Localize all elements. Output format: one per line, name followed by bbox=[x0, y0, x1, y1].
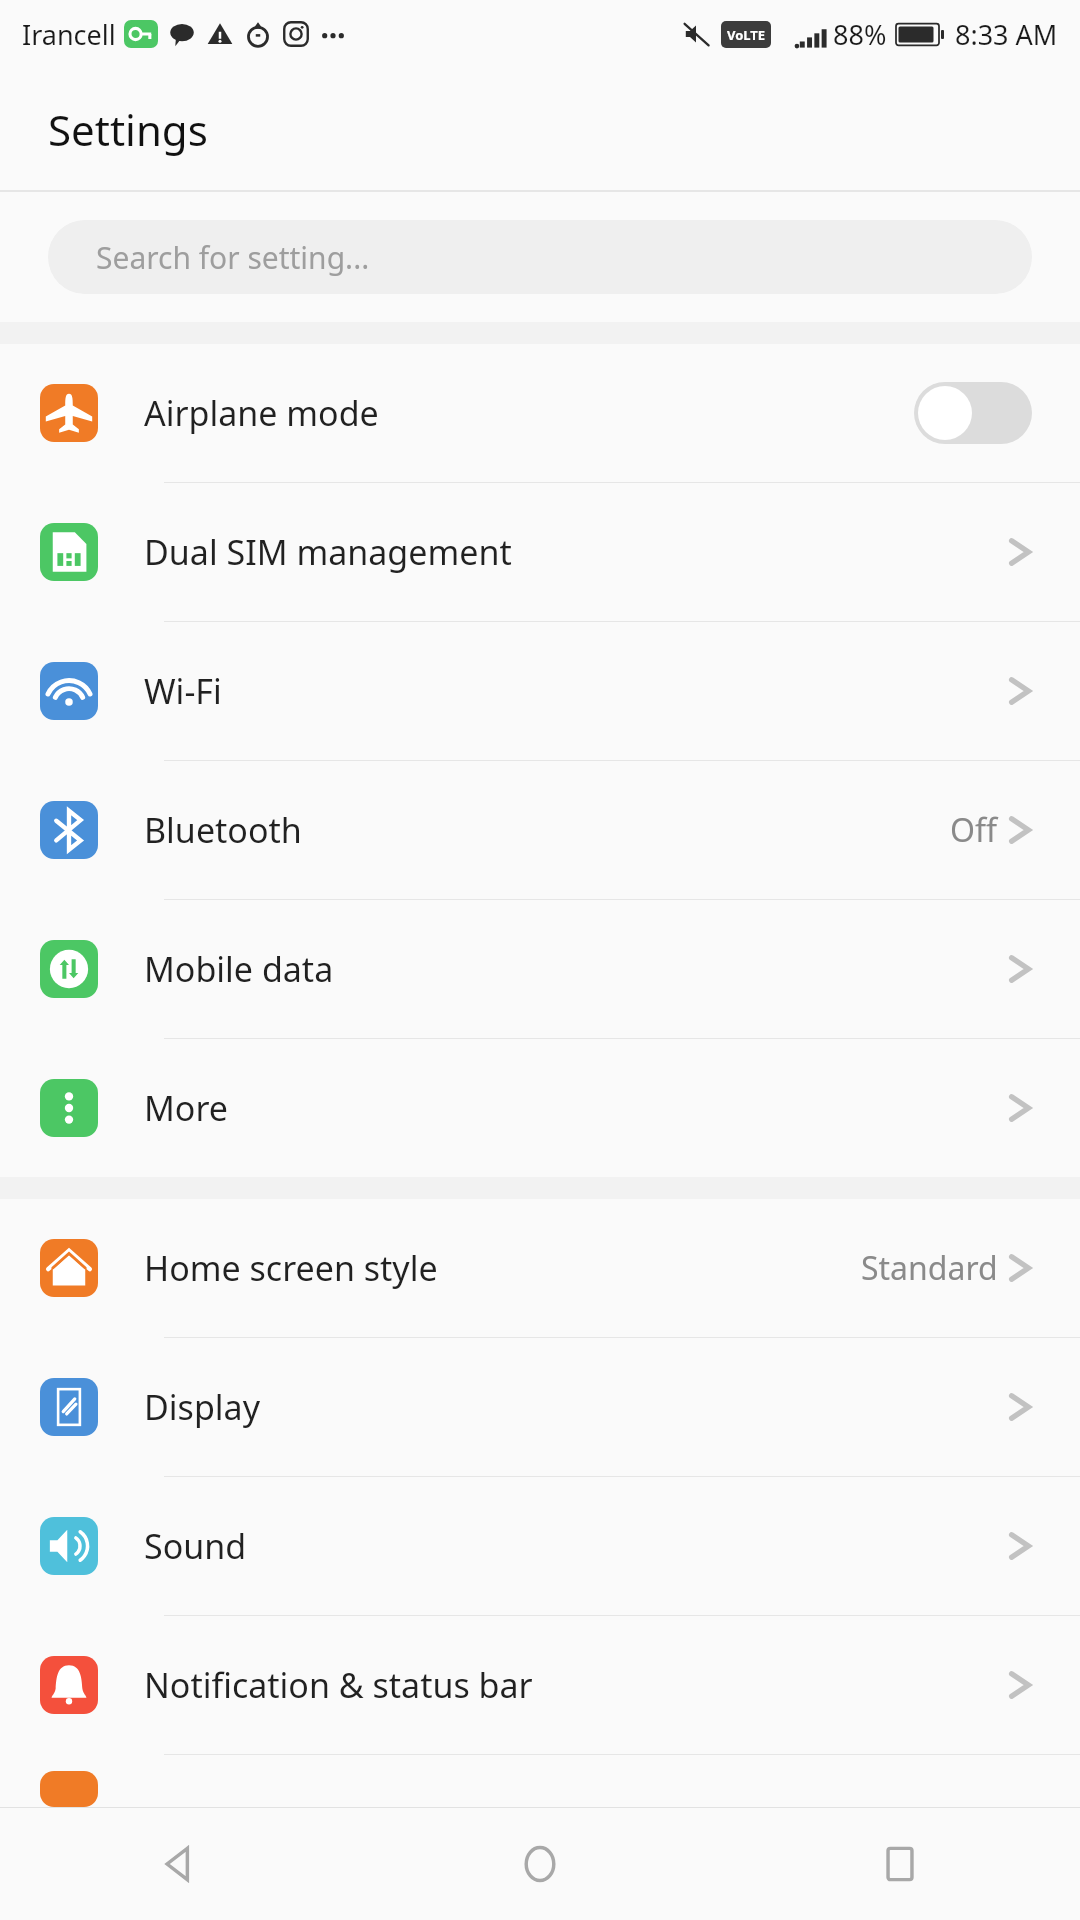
button[interactable]: Mobile data bbox=[0, 900, 1080, 1039]
staticText: Mobile data bbox=[144, 946, 334, 992]
button[interactable]: Sound bbox=[0, 1477, 1080, 1616]
staticText: Notification & status bar bbox=[144, 1662, 533, 1708]
button[interactable]: More bbox=[0, 1039, 1080, 1177]
button[interactable]: Bluetooth bbox=[0, 761, 1080, 900]
staticText: Settings bbox=[48, 101, 208, 158]
button[interactable]: Back bbox=[0, 1808, 360, 1920]
staticText: Standard bbox=[861, 1246, 998, 1290]
staticText: Display bbox=[144, 1384, 260, 1430]
button[interactable]: Search for setting... bbox=[48, 220, 1032, 294]
button[interactable]: Notification & status bar bbox=[0, 1616, 1080, 1755]
staticText: Off bbox=[950, 808, 998, 852]
button[interactable] bbox=[0, 1755, 1080, 1807]
staticText: VoLTE bbox=[727, 26, 766, 44]
button[interactable]: Home screen style bbox=[0, 1199, 1080, 1338]
button[interactable]: Home bbox=[360, 1808, 720, 1920]
staticText: Wi-Fi bbox=[144, 668, 222, 714]
button[interactable]: Display bbox=[0, 1338, 1080, 1477]
staticText: More bbox=[144, 1085, 228, 1131]
button[interactable]: Recents bbox=[720, 1808, 1080, 1920]
staticText: Search for setting... bbox=[96, 237, 370, 278]
staticText: Irancell bbox=[22, 16, 116, 53]
button[interactable]: Airplane mode bbox=[0, 344, 1080, 483]
staticText: Home screen style bbox=[144, 1245, 438, 1291]
button[interactable]: Dual SIM management bbox=[0, 483, 1080, 622]
button[interactable]: Airplane mode toggle bbox=[914, 382, 1032, 444]
button[interactable]: Wi-Fi bbox=[0, 622, 1080, 761]
staticText: Dual SIM management bbox=[144, 529, 512, 575]
staticText: Airplane mode bbox=[144, 390, 379, 436]
staticText: Sound bbox=[144, 1523, 247, 1569]
staticText: 88% bbox=[833, 16, 887, 53]
staticText: Bluetooth bbox=[144, 807, 302, 853]
staticText: 8:33 AM bbox=[955, 16, 1058, 53]
